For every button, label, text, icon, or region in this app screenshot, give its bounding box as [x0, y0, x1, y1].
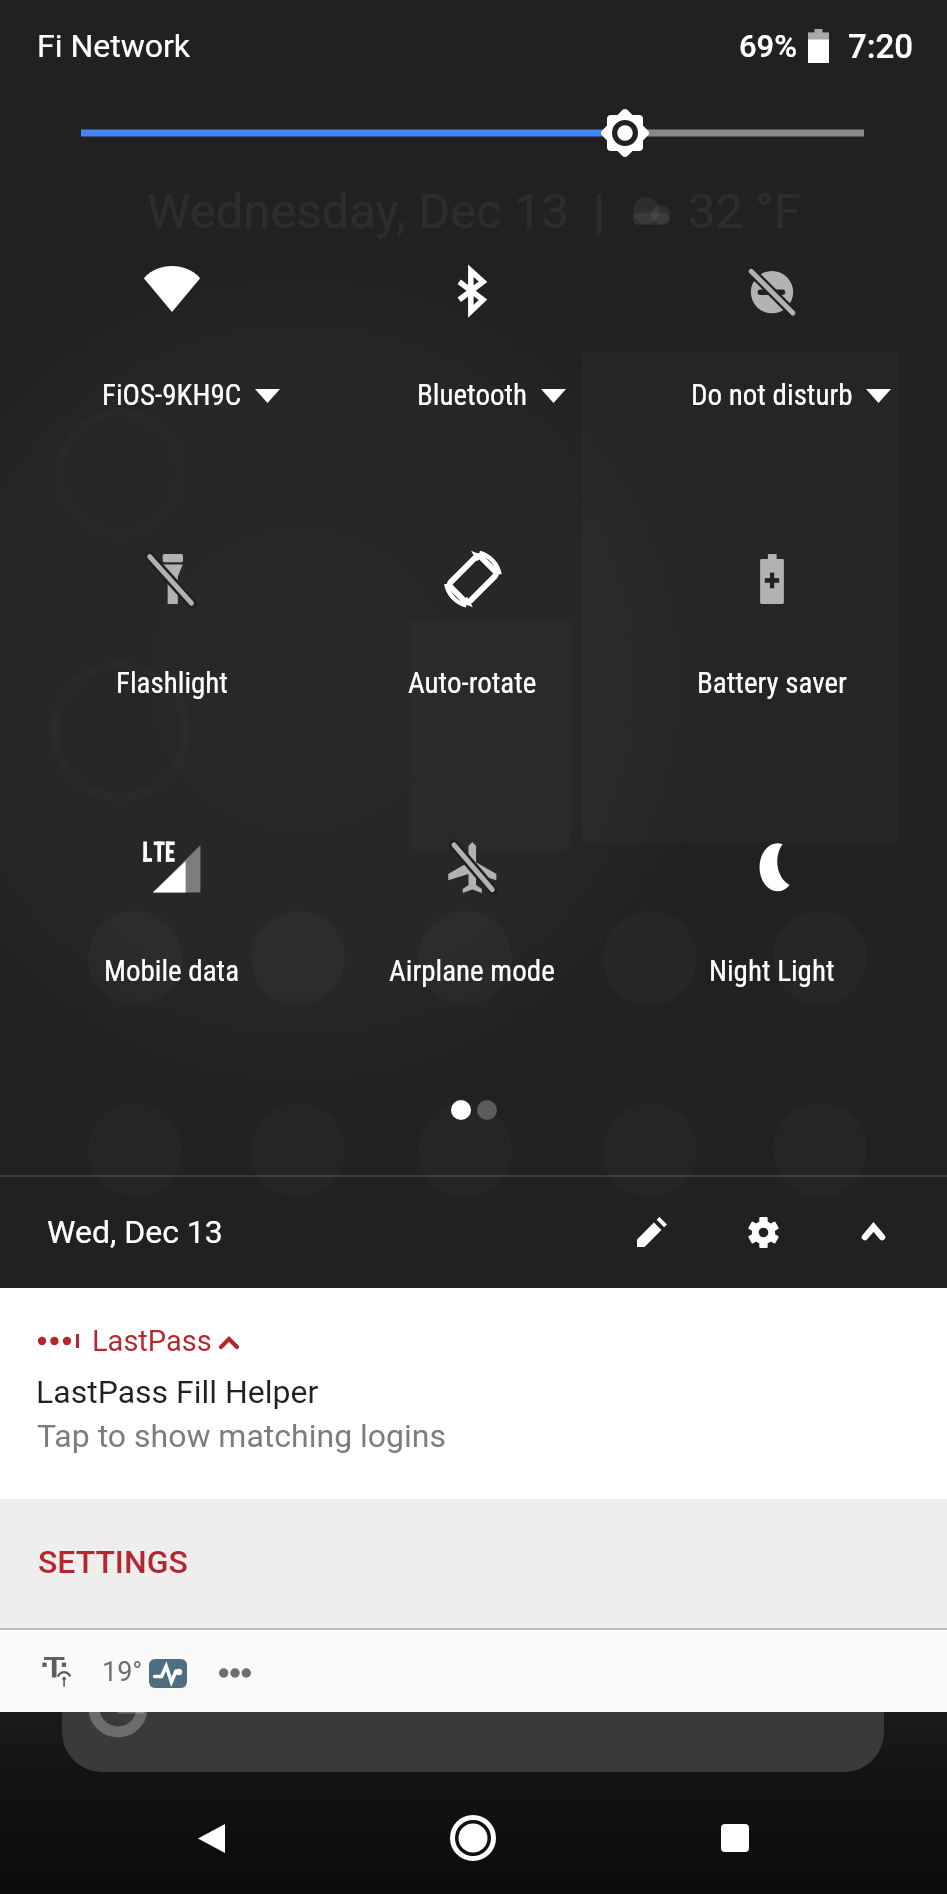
staticText: 19° — [102, 1656, 143, 1688]
staticText: Flashlight — [116, 666, 228, 700]
button[interactable]: SETTINGS — [0, 1499, 947, 1628]
staticText: Wed, Dec 13 — [47, 1213, 223, 1251]
staticText: Tap to show matching logins — [37, 1417, 446, 1455]
staticText: Auto-rotate — [408, 666, 537, 700]
button[interactable]: Mobile data — [22, 822, 322, 1110]
staticText: Battery saver — [697, 666, 847, 700]
staticText: 32 °F — [688, 183, 801, 240]
button[interactable]: Airplane mode — [322, 822, 622, 1110]
staticText: 7:20 — [848, 27, 914, 66]
staticText: Airplane mode — [389, 954, 555, 988]
staticText: FiOS-9KH9C — [102, 378, 242, 412]
staticText: Mobile data — [104, 954, 240, 988]
staticText: LastPass Fill Helper — [36, 1373, 319, 1411]
button[interactable]: Back — [166, 1793, 256, 1883]
staticText: 69% — [739, 28, 798, 64]
button[interactable]: Bluetooth — [322, 246, 622, 534]
button[interactable]: LastPass — [0, 1288, 947, 1499]
button[interactable]: Night Light — [622, 822, 922, 1110]
staticText: Do not disturb — [691, 378, 853, 412]
staticText: Bluetooth — [417, 378, 528, 412]
button[interactable]: FiOS-9KH9C — [22, 246, 322, 534]
button[interactable]: Settings — [719, 1188, 807, 1276]
button[interactable]: Flashlight — [22, 534, 322, 822]
button[interactable]: Recents — [690, 1793, 780, 1883]
staticText: Wednesday, Dec 13 | — [147, 183, 606, 240]
staticText: Night Light — [709, 954, 835, 988]
button[interactable]: Battery saver — [622, 534, 922, 822]
staticText: SETTINGS — [38, 1543, 188, 1581]
button[interactable]: Google search — [62, 1712, 884, 1772]
button[interactable]: Auto-rotate — [322, 534, 622, 822]
staticText: Fi Network — [37, 27, 191, 65]
button[interactable]: Do not disturb — [622, 246, 922, 534]
staticText: LastPass — [92, 1324, 212, 1358]
button[interactable]: Home — [428, 1793, 518, 1883]
button[interactable]: Collapse — [829, 1188, 917, 1276]
button[interactable]: Edit tiles — [608, 1188, 696, 1276]
